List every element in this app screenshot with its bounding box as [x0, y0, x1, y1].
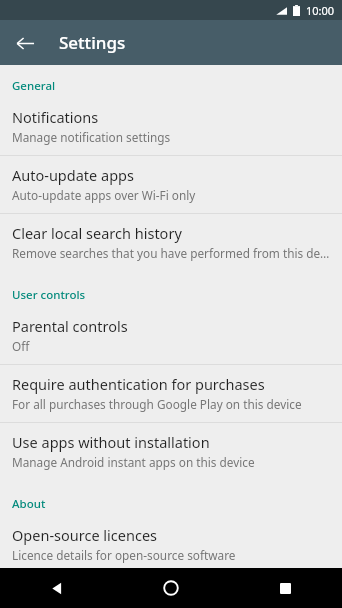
staticText: Use apps without installation: [12, 432, 210, 452]
button[interactable]: Open-source licences: [0, 516, 342, 573]
button[interactable]: Back: [8, 26, 42, 60]
staticText: 10:00: [306, 3, 335, 18]
button[interactable]: Require authentication for purchases: [0, 365, 342, 422]
staticText: Settings: [59, 31, 126, 54]
button[interactable]: Back: [0, 568, 114, 608]
button[interactable]: Notifications: [0, 98, 342, 155]
staticText: Remove searches that you have performed …: [12, 245, 330, 261]
button[interactable]: Recents: [228, 568, 342, 608]
staticText: Clear local search history: [12, 223, 182, 243]
staticText: Manage Android instant apps on this devi…: [12, 454, 255, 470]
button[interactable]: Parental controls: [0, 307, 342, 364]
staticText: Require authentication for purchases: [12, 374, 265, 394]
staticText: For all purchases through Google Play on…: [12, 396, 302, 412]
staticText: Open-source licences: [12, 525, 157, 545]
staticText: Off: [12, 338, 30, 354]
staticText: About: [12, 496, 46, 512]
button[interactable]: Home: [114, 568, 228, 608]
staticText: Manage notification settings: [12, 129, 171, 145]
staticText: Auto-update apps: [12, 165, 134, 185]
staticText: Licence details for open-source software: [12, 547, 236, 563]
button[interactable]: Clear local search history: [0, 214, 342, 271]
button[interactable]: Auto-update apps: [0, 156, 342, 213]
staticText: Notifications: [12, 107, 99, 127]
staticText: User controls: [12, 287, 86, 303]
staticText: Auto-update apps over Wi-Fi only: [12, 187, 196, 203]
staticText: General: [12, 78, 56, 94]
button[interactable]: Use apps without installation: [0, 423, 342, 480]
staticText: Parental controls: [12, 316, 128, 336]
